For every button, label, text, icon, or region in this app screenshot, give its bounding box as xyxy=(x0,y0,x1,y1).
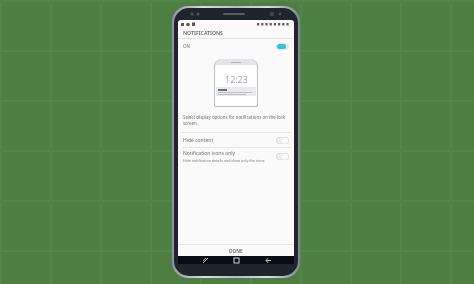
button[interactable]: Hide content xyxy=(178,133,294,147)
button[interactable]: Home xyxy=(231,256,241,264)
staticText: Hide content xyxy=(183,137,214,144)
button[interactable]: Notifications on xyxy=(276,43,289,50)
button[interactable]: DONE xyxy=(178,245,294,258)
button[interactable]: Toggle xyxy=(276,137,289,144)
button[interactable]: Notification icons only xyxy=(178,148,294,165)
staticText: Notification icons only xyxy=(183,150,236,157)
button[interactable]: ON xyxy=(178,39,294,53)
button[interactable]: Toggle xyxy=(276,153,289,160)
button[interactable]: Recents xyxy=(200,256,210,264)
staticText: Hide notification details and show only … xyxy=(183,158,265,163)
staticText: NOTIFICATIONS xyxy=(183,29,223,36)
staticText: 12:23 xyxy=(225,73,248,85)
staticText: Select display options for notifications… xyxy=(183,114,289,126)
staticText: ON xyxy=(183,43,191,49)
staticText: DONE xyxy=(229,248,243,255)
button[interactable]: Back xyxy=(263,256,273,264)
